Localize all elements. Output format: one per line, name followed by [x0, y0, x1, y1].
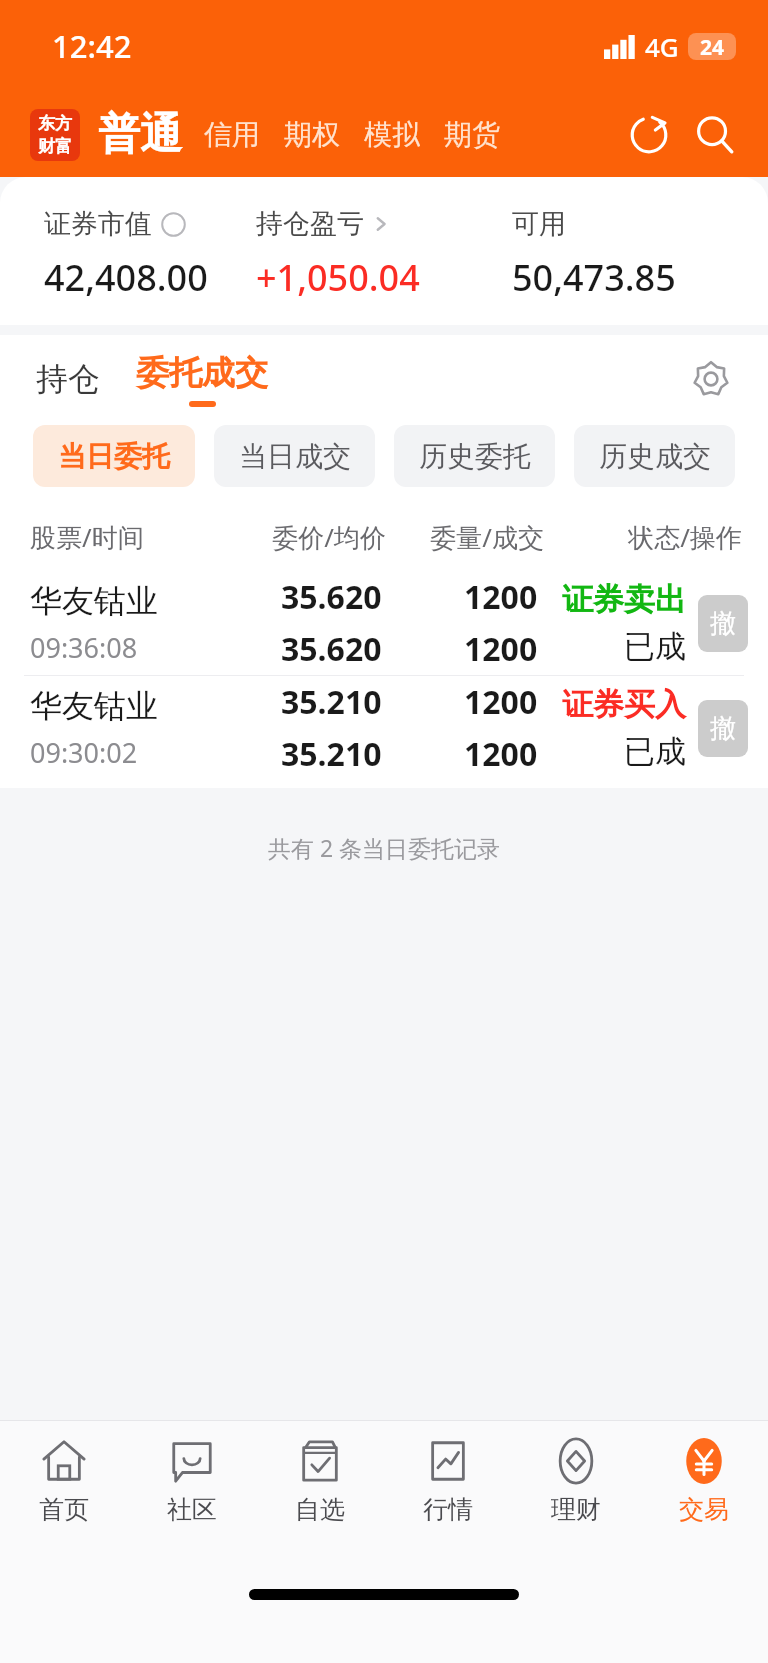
button[interactable]: 华友钴业 [0, 676, 768, 780]
button[interactable]: 期权 [284, 111, 340, 158]
staticText: 股票/时间 [30, 519, 212, 555]
button[interactable]: 信用 [204, 111, 260, 158]
staticText: 09:30:02 [30, 734, 138, 771]
staticText: +1,050.04 [256, 253, 420, 302]
staticText: 42,408.00 [44, 253, 208, 302]
staticText: 华友钴业 [30, 686, 158, 726]
staticText: 35.620 [281, 627, 382, 671]
button[interactable]: 历史成交 [574, 425, 735, 487]
staticText: 持仓盈亏 [256, 207, 364, 241]
button[interactable]: 撤 [698, 700, 748, 757]
staticText: 可用 [512, 207, 566, 241]
staticText: 已成 [624, 732, 686, 771]
button[interactable]: 当日委托 [33, 425, 195, 487]
button[interactable]: 撤 [698, 595, 748, 652]
staticText: 共有 2 条当日委托记录 [268, 832, 501, 863]
button[interactable]: 首页 [0, 1421, 128, 1541]
staticText: 当日委托 [58, 439, 170, 474]
staticText: 证券卖出 [562, 580, 686, 619]
staticText: 持仓 [36, 359, 100, 399]
staticText: 50,473.85 [512, 253, 676, 302]
button[interactable]: 华友钴业 [0, 571, 768, 675]
staticText: 证券买入 [562, 685, 686, 724]
staticText: 35.210 [281, 732, 382, 776]
staticText: 交易 [679, 1494, 729, 1525]
staticText: 自选 [295, 1494, 345, 1525]
button[interactable]: 持仓 [30, 349, 106, 409]
button[interactable]: 东方财富 [30, 109, 80, 161]
button[interactable]: 刷新 [622, 108, 676, 162]
staticText: 委价/均价 [212, 519, 386, 555]
staticText: 35.620 [281, 575, 382, 619]
button[interactable]: 自选 [256, 1421, 384, 1541]
staticText: 24 [700, 33, 725, 60]
staticText: 行情 [423, 1494, 473, 1525]
staticText: 华友钴业 [30, 581, 158, 621]
staticText: 委量/成交 [386, 519, 544, 555]
button[interactable]: 证券市值 [44, 207, 256, 302]
staticText: 已成 [624, 627, 686, 666]
staticText: 普通 [98, 108, 182, 161]
staticText: 当日成交 [239, 439, 351, 474]
staticText: 状态/操作 [544, 519, 742, 555]
button[interactable]: 设置 [684, 352, 738, 406]
staticText: 社区 [167, 1494, 217, 1525]
button[interactable]: 期货 [444, 111, 500, 158]
button[interactable]: 交易 [640, 1421, 768, 1541]
staticText: 委托成交 [136, 352, 268, 394]
button[interactable]: 模拟 [364, 111, 420, 158]
button[interactable]: 理财 [512, 1421, 640, 1541]
staticText: 35.210 [281, 680, 382, 724]
staticText: 1200 [464, 627, 538, 671]
staticText: 1200 [464, 732, 538, 776]
staticText: 信用 [204, 117, 260, 152]
staticText: 财富 [38, 136, 72, 157]
staticText: 1200 [464, 575, 538, 619]
staticText: 证券市值 [44, 207, 152, 241]
button[interactable]: 搜索 [688, 108, 742, 162]
button[interactable]: 当日成交 [214, 425, 375, 487]
staticText: 09:36:08 [30, 629, 138, 666]
staticText: 12:42 [52, 25, 132, 67]
staticText: 模拟 [364, 117, 420, 152]
button[interactable]: 可用 [512, 207, 768, 302]
staticText: 首页 [39, 1494, 89, 1525]
button[interactable]: 历史委托 [394, 425, 555, 487]
staticText: 东方 [38, 113, 72, 134]
button[interactable]: 委托成交 [130, 352, 274, 407]
staticText: 期货 [444, 117, 500, 152]
staticText: 撤 [710, 712, 736, 745]
button[interactable]: 持仓盈亏 [256, 207, 512, 302]
staticText: 理财 [551, 1494, 601, 1525]
button[interactable]: 社区 [128, 1421, 256, 1541]
staticText: 撤 [710, 607, 736, 640]
button[interactable]: 行情 [384, 1421, 512, 1541]
staticText: 4G [645, 29, 679, 64]
staticText: 历史委托 [419, 439, 531, 474]
staticText: 历史成交 [599, 439, 711, 474]
staticText: 1200 [464, 680, 538, 724]
staticText: 期权 [284, 117, 340, 152]
button[interactable]: 普通 [98, 108, 182, 161]
